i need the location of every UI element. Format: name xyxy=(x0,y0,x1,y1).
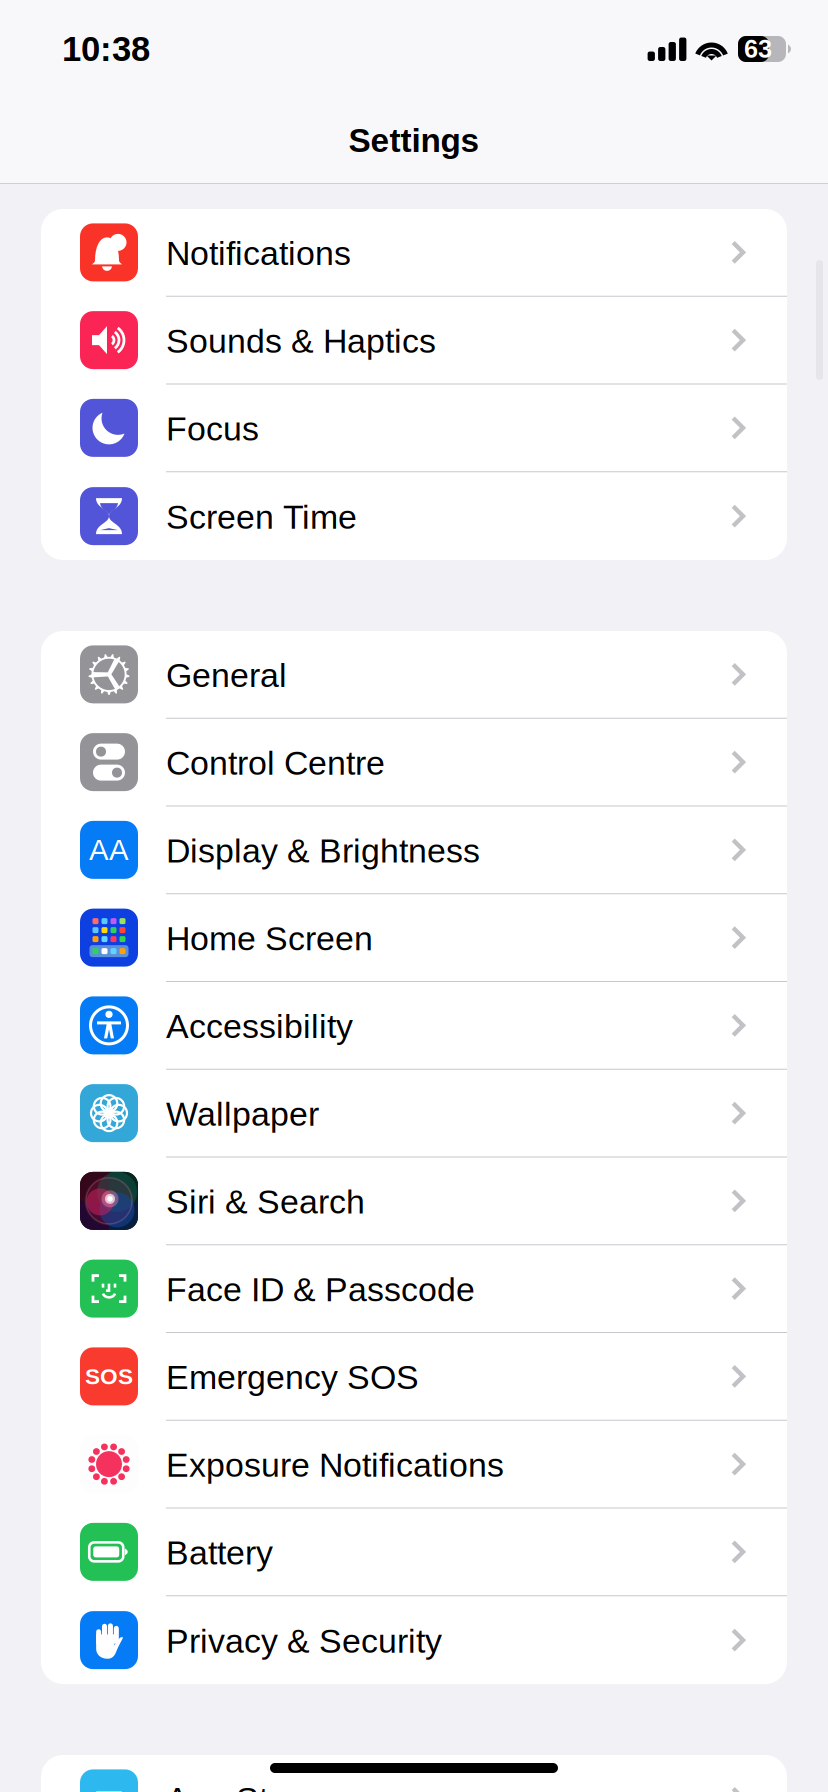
staticText: SOS xyxy=(85,1364,133,1389)
button[interactable]: Sounds & Haptics xyxy=(41,297,787,385)
staticText: Focus xyxy=(166,410,259,448)
button[interactable]: Focus xyxy=(41,384,787,472)
staticText: Battery xyxy=(166,1534,273,1572)
staticText: Notifications xyxy=(166,234,351,272)
staticText: Privacy & Security xyxy=(166,1622,442,1660)
staticText: General xyxy=(166,656,287,694)
staticText: Control Centre xyxy=(166,744,385,782)
button[interactable]: AA xyxy=(41,806,787,894)
staticText: Sounds & Haptics xyxy=(166,322,436,360)
staticText: Home Screen xyxy=(166,920,373,957)
staticText: Accessibility xyxy=(166,1007,353,1045)
staticText: 10:38 xyxy=(62,30,150,68)
button[interactable]: Privacy & Security xyxy=(41,1596,787,1684)
button[interactable]: Battery xyxy=(41,1508,787,1596)
staticText: Face ID & Passcode xyxy=(166,1271,475,1308)
staticText: Exposure Notifications xyxy=(166,1446,504,1484)
staticText: Wallpaper xyxy=(166,1095,319,1133)
staticText: Emergency SOS xyxy=(166,1358,419,1396)
button[interactable]: Wallpaper xyxy=(41,1070,787,1158)
button[interactable]: Accessibility xyxy=(41,982,787,1070)
button[interactable]: App Store xyxy=(41,1755,787,1792)
staticText: Settings xyxy=(348,122,479,159)
staticText: 63 xyxy=(744,35,772,63)
button[interactable]: Control Centre xyxy=(41,719,787,807)
button[interactable]: Screen Time xyxy=(41,472,787,560)
staticText: Screen Time xyxy=(166,498,357,536)
button[interactable]: Notifications xyxy=(41,209,787,297)
staticText: AA xyxy=(89,833,129,866)
staticText: Siri & Search xyxy=(166,1183,365,1221)
staticText: App Store xyxy=(166,1780,317,1792)
staticText: Display & Brightness xyxy=(166,832,480,870)
button[interactable]: Siri & Search xyxy=(41,1157,787,1245)
button[interactable]: Home Screen xyxy=(41,894,787,982)
button[interactable]: SOS xyxy=(41,1333,787,1421)
button[interactable]: General xyxy=(41,631,787,719)
button[interactable]: Face ID & Passcode xyxy=(41,1245,787,1333)
button[interactable]: Exposure Notifications xyxy=(41,1421,787,1509)
